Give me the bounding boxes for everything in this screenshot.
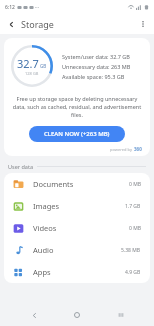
- staticText: 128 GB: [25, 71, 39, 76]
- staticText: 0 MB: [129, 181, 141, 188]
- button[interactable]: More options: [135, 16, 151, 32]
- staticText: 360: [134, 146, 142, 152]
- button[interactable]: CLEAN NOW (+263 MB): [29, 126, 125, 142]
- staticText: ···: [35, 4, 40, 11]
- button[interactable]: Documents: [4, 173, 150, 195]
- staticText: 6:12: [5, 4, 15, 11]
- button[interactable]: Back: [3, 16, 19, 32]
- staticText: 0 MB: [129, 225, 141, 232]
- staticText: CLEAN NOW (+263 MB): [44, 130, 110, 138]
- staticText: Unnecessary data: 263 MB: [62, 63, 131, 70]
- staticText: GB: [40, 63, 47, 69]
- staticText: 5.38 MB: [121, 247, 141, 254]
- staticText: powered by: [110, 147, 132, 152]
- button[interactable]: Audio: [4, 239, 150, 261]
- button[interactable]: Home: [67, 305, 87, 325]
- staticText: Storage: [21, 18, 54, 30]
- staticText: Images: [33, 201, 60, 211]
- button[interactable]: Images: [4, 195, 150, 217]
- staticText: Available space: 95.3 GB: [62, 73, 125, 80]
- button[interactable]: Back: [24, 305, 44, 325]
- staticText: Audio: [33, 245, 54, 255]
- staticText: 1.7 GB: [125, 203, 141, 210]
- staticText: User data: [8, 163, 33, 170]
- staticText: 4.9 GB: [125, 269, 141, 276]
- staticText: Apps: [33, 267, 51, 277]
- staticText: Documents: [33, 179, 74, 189]
- button[interactable]: Recents: [111, 305, 131, 325]
- staticText: System/user data: 32.7 GB: [62, 53, 130, 60]
- staticText: Videos: [33, 223, 57, 233]
- button[interactable]: Apps: [4, 261, 150, 283]
- staticText: Free up storage space by deleting unnece…: [12, 95, 142, 119]
- button[interactable]: Videos: [4, 217, 150, 239]
- staticText: 32.7: [17, 56, 39, 71]
